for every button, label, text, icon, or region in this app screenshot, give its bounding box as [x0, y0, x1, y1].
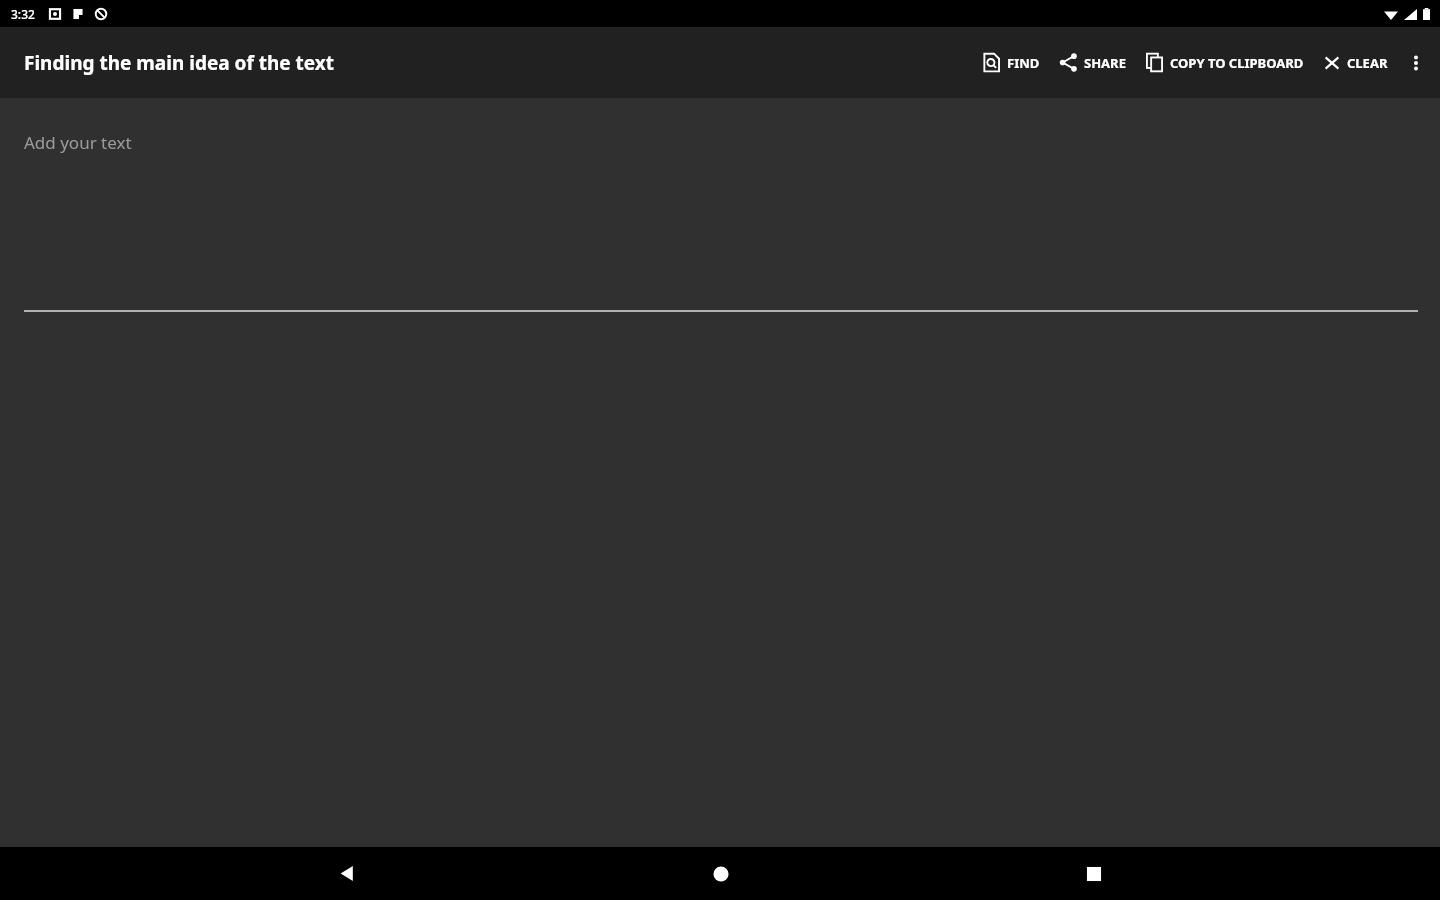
- button[interactable]: Recent apps: [1067, 847, 1120, 900]
- button[interactable]: Back: [321, 847, 374, 900]
- button[interactable]: CLEAR: [1320, 45, 1390, 81]
- button[interactable]: SHARE: [1056, 44, 1128, 81]
- button[interactable]: FIND: [979, 44, 1042, 81]
- button[interactable]: More options: [1398, 45, 1434, 81]
- staticText: 3:32: [11, 6, 35, 22]
- button[interactable]: COPY TO CLIPBOARD: [1142, 44, 1306, 81]
- button[interactable]: Add your text: [0, 98, 1440, 312]
- button[interactable]: Home: [694, 847, 747, 900]
- staticText: SHARE: [1084, 54, 1126, 72]
- staticText: Finding the main idea of the text: [24, 50, 335, 76]
- staticText: FIND: [1007, 54, 1040, 72]
- staticText: COPY TO CLIPBOARD: [1170, 54, 1304, 72]
- staticText: CLEAR: [1347, 54, 1388, 72]
- staticText: Add your text: [24, 131, 132, 154]
